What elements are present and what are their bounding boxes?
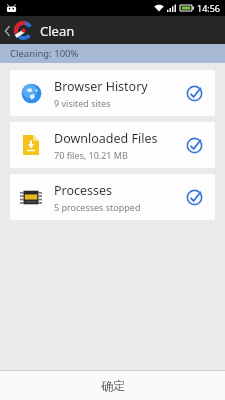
button[interactable]: Cleaned: [181, 184, 207, 210]
staticText: 确定: [101, 378, 125, 393]
staticText: 5 processes stopped: [54, 201, 141, 213]
staticText: 14:56: [197, 2, 221, 14]
button[interactable]: Downloaded Files: [10, 122, 215, 168]
button[interactable]: Cleaned: [181, 80, 207, 106]
button[interactable]: Browser History: [10, 70, 215, 116]
button[interactable]: Processes: [10, 174, 215, 220]
button[interactable]: Cleaned: [181, 132, 207, 158]
staticText: Browser History: [54, 78, 148, 95]
staticText: 9 visited sites: [54, 97, 111, 109]
staticText: Clean: [40, 22, 75, 40]
staticText: Cleaning: 100%: [10, 47, 79, 60]
staticText: Downloaded Files: [54, 130, 158, 147]
button[interactable]: 确定: [0, 371, 225, 400]
staticText: 70 files, 10.21 MB: [54, 149, 128, 161]
button[interactable]: Back: [0, 21, 83, 40]
staticText: Processes: [54, 182, 113, 199]
other: Back: [4, 25, 11, 37]
